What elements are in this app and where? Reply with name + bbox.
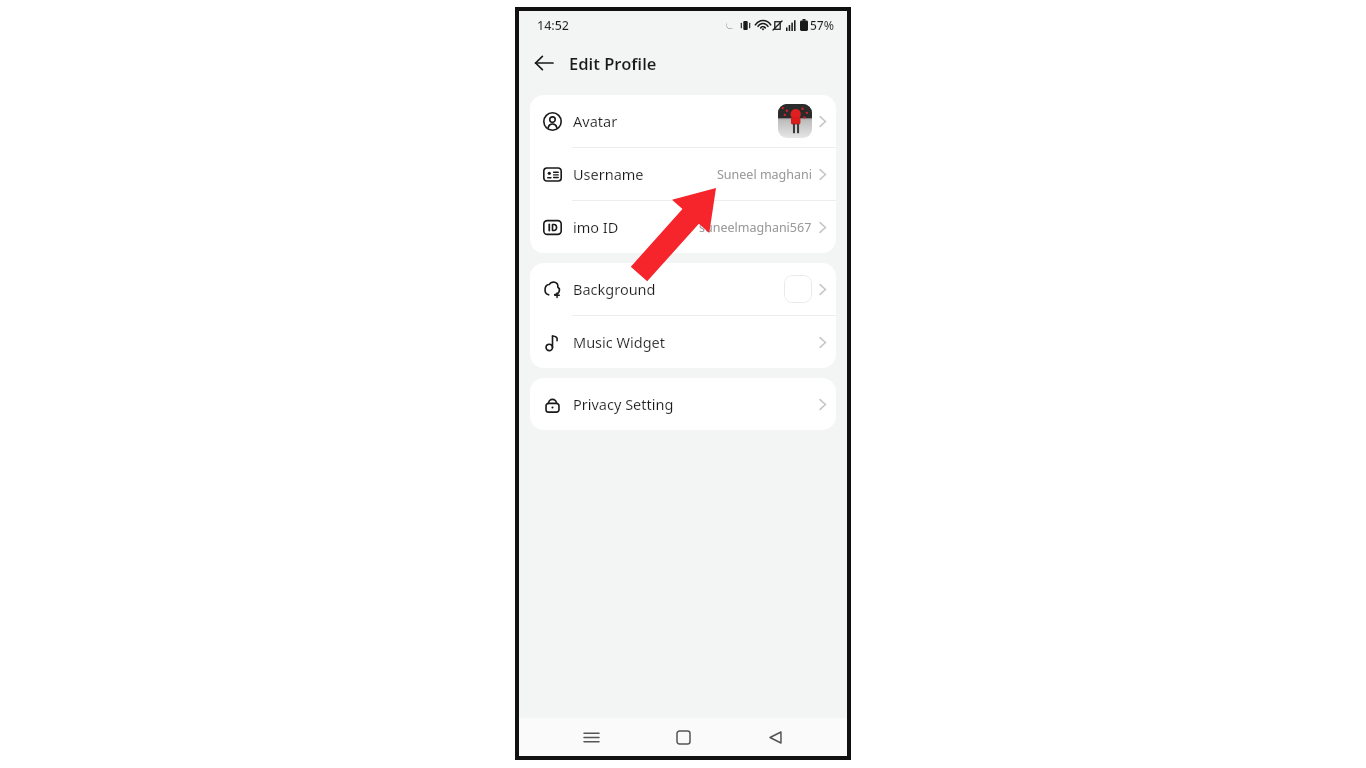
button[interactable]: Home [663, 718, 703, 756]
staticText: 14:52 [537, 17, 570, 34]
button[interactable]: Music Widget [530, 316, 836, 368]
button[interactable]: Back [755, 718, 795, 756]
staticText: Edit Profile [569, 52, 657, 74]
staticText: Privacy Setting [573, 394, 674, 414]
button[interactable]: imo ID [530, 201, 836, 253]
staticText: Username [573, 164, 644, 184]
staticText: Suneel maghani [717, 166, 812, 183]
staticText: imo ID [573, 217, 619, 237]
button[interactable]: Back [525, 44, 563, 82]
button[interactable]: Recents [571, 718, 611, 756]
staticText: Avatar [573, 111, 618, 131]
staticText: 57% [810, 17, 834, 33]
button[interactable]: Avatar [530, 95, 836, 147]
button[interactable]: Username [530, 148, 836, 200]
staticText: suneelmaghani567 [699, 219, 812, 236]
staticText: Background [573, 279, 656, 299]
button[interactable]: Background [530, 263, 836, 315]
button[interactable]: Privacy Setting [530, 378, 836, 430]
staticText: Music Widget [573, 332, 666, 352]
